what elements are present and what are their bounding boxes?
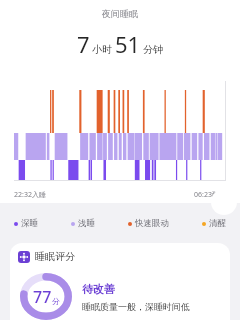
staticText: 快速眼动 (135, 218, 169, 229)
staticText: 浅睡 (78, 218, 95, 229)
button[interactable]: 快速眼动 (128, 218, 169, 229)
staticText: 分钟 (143, 43, 163, 56)
button[interactable]: 深睡 (14, 218, 38, 229)
staticText: 77 (33, 286, 52, 308)
staticText: 小时 (92, 43, 112, 56)
staticText: 待改善 (82, 282, 115, 296)
button[interactable]: 睡眠评分 (10, 243, 230, 320)
staticText: 夜间睡眠 (102, 8, 138, 19)
button[interactable]: 更多 (211, 189, 237, 215)
staticText: 睡眠评分 (35, 250, 75, 263)
staticText: 7 (77, 29, 90, 59)
staticText: 睡眠质量一般，深睡时间低 (82, 301, 190, 312)
button[interactable]: 清醒 (202, 218, 226, 229)
staticText: 分 (52, 296, 60, 306)
staticText: 清醒 (209, 218, 226, 229)
button[interactable]: 浅睡 (71, 218, 95, 229)
staticText: 22:32入睡 (14, 190, 46, 200)
staticText: 51 (115, 29, 141, 59)
staticText: 深睡 (21, 218, 38, 229)
staticText: 06:23醒来 (194, 190, 226, 200)
